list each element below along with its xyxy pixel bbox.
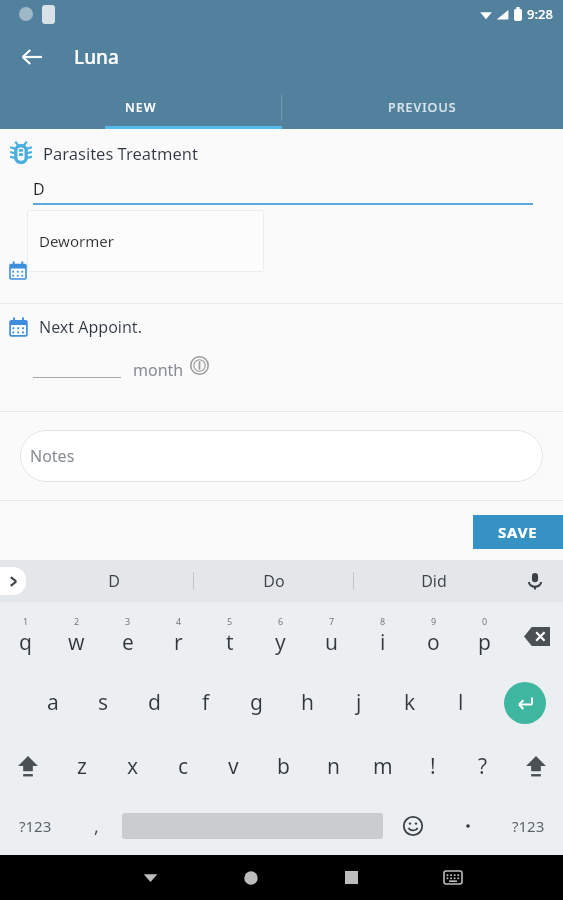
button[interactable]: f [180, 670, 231, 735]
button[interactable]: m [358, 735, 408, 797]
staticText: x [127, 752, 139, 781]
staticText: 1 [23, 615, 29, 627]
staticText: n [327, 752, 340, 781]
button[interactable]: Back [100, 855, 200, 900]
staticText: SAVE [498, 522, 538, 542]
button[interactable]: SAVE [473, 515, 563, 549]
button[interactable]: ?123 [493, 797, 563, 855]
staticText: o [427, 628, 440, 657]
button[interactable]: h [282, 670, 333, 735]
staticText: y [275, 628, 286, 657]
staticText: j [356, 688, 362, 717]
staticText: ?123 [512, 816, 545, 836]
button[interactable]: 7 [306, 602, 357, 670]
button[interactable]: n [308, 735, 358, 797]
button[interactable]: PREVIOUS [281, 86, 563, 129]
button[interactable]: ? [458, 735, 508, 797]
staticText: Dewormer [39, 231, 114, 251]
staticText: t [226, 628, 234, 657]
staticText: i [380, 628, 386, 657]
button[interactable]: Home [200, 855, 301, 900]
staticText: p [478, 628, 491, 657]
staticText: D [108, 570, 120, 592]
staticText: m [373, 752, 393, 781]
button[interactable]: 3 [102, 602, 153, 670]
button[interactable]: Info [190, 356, 209, 375]
button[interactable]: g [231, 670, 282, 735]
button[interactable] [443, 797, 493, 855]
staticText: l [458, 688, 464, 717]
staticText: a [47, 688, 59, 717]
button[interactable]: 6 [255, 602, 306, 670]
button[interactable]: , [71, 797, 122, 855]
button[interactable]: d [129, 670, 180, 735]
staticText: Parasites Treatment [43, 142, 198, 164]
staticText: ? [478, 752, 488, 781]
staticText: , [94, 814, 99, 839]
button[interactable]: NEW [0, 86, 281, 129]
button[interactable]: Voice input [513, 560, 557, 602]
button[interactable]: a [27, 670, 78, 735]
button[interactable]: 2 [51, 602, 102, 670]
button[interactable]: Backspace [510, 602, 563, 670]
staticText: 3 [125, 615, 131, 627]
staticText: c [178, 752, 189, 781]
staticText: 2 [74, 615, 80, 627]
staticText: ! [430, 752, 436, 781]
button[interactable]: ! [408, 735, 458, 797]
button[interactable]: ?123 [0, 797, 71, 855]
button[interactable]: 8 [357, 602, 408, 670]
button[interactable]: x [107, 735, 158, 797]
staticText: w [68, 628, 85, 657]
button[interactable]: Shift [508, 735, 563, 797]
button[interactable]: More suggestions [0, 567, 26, 595]
button[interactable]: z [56, 735, 107, 797]
staticText: b [277, 752, 290, 781]
staticText: 9 [431, 615, 437, 627]
staticText: g [250, 688, 263, 717]
staticText: Did [421, 570, 447, 592]
button[interactable]: Do [194, 560, 353, 602]
button[interactable]: Emoji [383, 797, 443, 855]
staticText: r [174, 628, 183, 657]
staticText: D [33, 178, 45, 200]
staticText: 7 [329, 615, 335, 627]
button[interactable]: 4 [153, 602, 204, 670]
button[interactable]: 1 [0, 602, 51, 670]
button[interactable]: D [34, 560, 193, 602]
button[interactable]: Back [8, 33, 56, 81]
button[interactable]: Switch keyboard [402, 855, 503, 900]
staticText: k [404, 688, 416, 717]
staticText: Notes [30, 445, 75, 467]
button[interactable]: Notes [20, 430, 543, 482]
button[interactable]: b [258, 735, 308, 797]
button[interactable]: s [78, 670, 129, 735]
staticText: e [122, 628, 134, 657]
button[interactable]: Shift [0, 735, 56, 797]
button[interactable]: Did [354, 560, 513, 602]
button[interactable]: 9 [408, 602, 459, 670]
button[interactable]: l [435, 670, 486, 735]
button[interactable]: j [333, 670, 384, 735]
button[interactable]: k [384, 670, 435, 735]
staticText: d [148, 688, 161, 717]
button[interactable]: 0 [459, 602, 510, 670]
staticText: 4 [176, 615, 182, 627]
button[interactable]: v [208, 735, 258, 797]
button[interactable]: Recents [301, 855, 402, 900]
button[interactable]: Dewormer [27, 210, 264, 272]
button[interactable]: c [158, 735, 208, 797]
staticText: u [325, 628, 338, 657]
staticText: Do [263, 570, 285, 592]
staticText: q [19, 628, 32, 657]
staticText: f [202, 688, 210, 717]
button[interactable]: Enter [486, 670, 563, 735]
staticText: PREVIOUS [388, 99, 457, 116]
staticText: month [133, 359, 184, 381]
staticText: Luna [74, 44, 119, 70]
staticText: 0 [482, 615, 488, 627]
staticText: s [98, 688, 109, 717]
button[interactable]: 5 [204, 602, 255, 670]
staticText: h [301, 688, 314, 717]
